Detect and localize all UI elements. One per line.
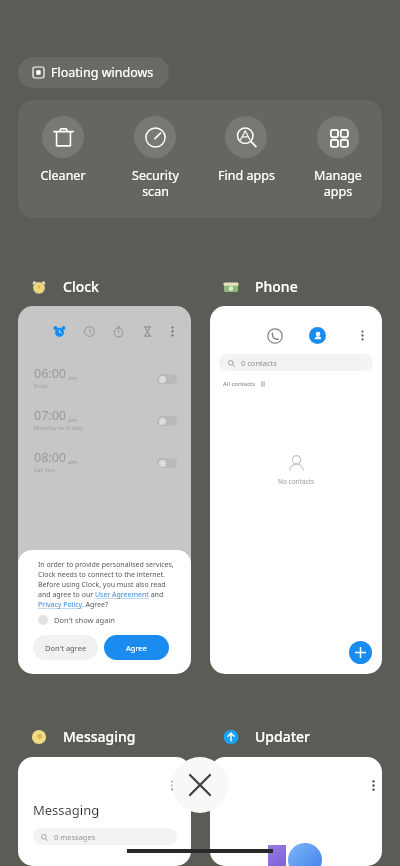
- button[interactable]: All contacts: [223, 380, 266, 388]
- staticText: All contacts: [223, 380, 256, 388]
- button[interactable]: More options: [210, 757, 382, 866]
- button[interactable]: Recents: [210, 306, 382, 674]
- button[interactable]: More options: [166, 325, 179, 338]
- button[interactable]: Alarm: [18, 306, 191, 674]
- button[interactable]: Clock: [31, 277, 99, 296]
- staticText: Floating windows: [51, 64, 154, 81]
- staticText: Sat Sun: [34, 466, 56, 474]
- staticText: Agree: [126, 643, 147, 653]
- button[interactable]: Recents: [267, 328, 283, 344]
- button[interactable]: Close all: [172, 757, 228, 813]
- button[interactable]: Cleaner: [21, 100, 105, 184]
- button[interactable]: Toggle alarm: [157, 416, 177, 426]
- button[interactable]: More options: [18, 757, 191, 866]
- button[interactable]: More options: [367, 779, 380, 792]
- staticText: am: [68, 374, 77, 382]
- button[interactable]: Updater: [223, 727, 311, 746]
- button[interactable]: 0 contacts: [219, 354, 373, 371]
- staticText: Clock: [63, 277, 99, 296]
- button[interactable]: Security scan: [113, 100, 197, 199]
- button[interactable]: Alarm: [54, 326, 65, 337]
- staticText: 06:00: [34, 365, 66, 382]
- staticText: Cleaner: [40, 167, 86, 184]
- button[interactable]: Manage apps: [296, 100, 380, 199]
- staticText: Manage apps: [314, 167, 362, 199]
- button[interactable]: More options: [356, 329, 369, 342]
- staticText: 07:00: [34, 407, 66, 424]
- staticText: Messaging: [63, 727, 136, 746]
- staticText: Don't agree: [45, 643, 87, 653]
- staticText: No contacts: [278, 477, 315, 486]
- button[interactable]: Don't agree: [33, 635, 98, 660]
- staticText: Daily: [34, 382, 48, 390]
- staticText: 0 messages: [54, 832, 96, 842]
- staticText: Find apps: [218, 167, 275, 184]
- button[interactable]: Don't show again: [38, 615, 115, 625]
- staticText: am: [68, 416, 77, 424]
- button[interactable]: Toggle alarm: [157, 458, 177, 468]
- staticText: Security scan: [132, 167, 179, 199]
- staticText: In order to provide personalised service…: [38, 560, 174, 610]
- staticText: Phone: [255, 277, 298, 296]
- button[interactable]: Floating windows: [18, 57, 169, 88]
- button[interactable]: Phone: [223, 277, 298, 296]
- staticText: am: [68, 458, 77, 466]
- button[interactable]: Messaging: [31, 727, 136, 746]
- button[interactable]: Clock: [84, 326, 95, 337]
- button[interactable]: Agree: [104, 635, 169, 660]
- button[interactable]: Add contact: [349, 641, 372, 664]
- staticText: Monday to Friday: [34, 424, 84, 432]
- staticText: Updater: [255, 727, 311, 746]
- button[interactable]: Stopwatch: [113, 326, 124, 337]
- button[interactable]: More options: [166, 779, 179, 792]
- button[interactable]: 0 messages: [33, 828, 177, 845]
- staticText: 08:00: [34, 449, 66, 466]
- button[interactable]: Contacts: [309, 327, 326, 344]
- staticText: Don't show again: [54, 615, 115, 625]
- staticText: 0 contacts: [241, 358, 277, 368]
- button[interactable]: Toggle alarm: [157, 374, 177, 384]
- staticText: Messaging: [33, 801, 100, 819]
- button[interactable]: Find apps: [204, 100, 288, 184]
- button[interactable]: Timer: [142, 326, 153, 337]
